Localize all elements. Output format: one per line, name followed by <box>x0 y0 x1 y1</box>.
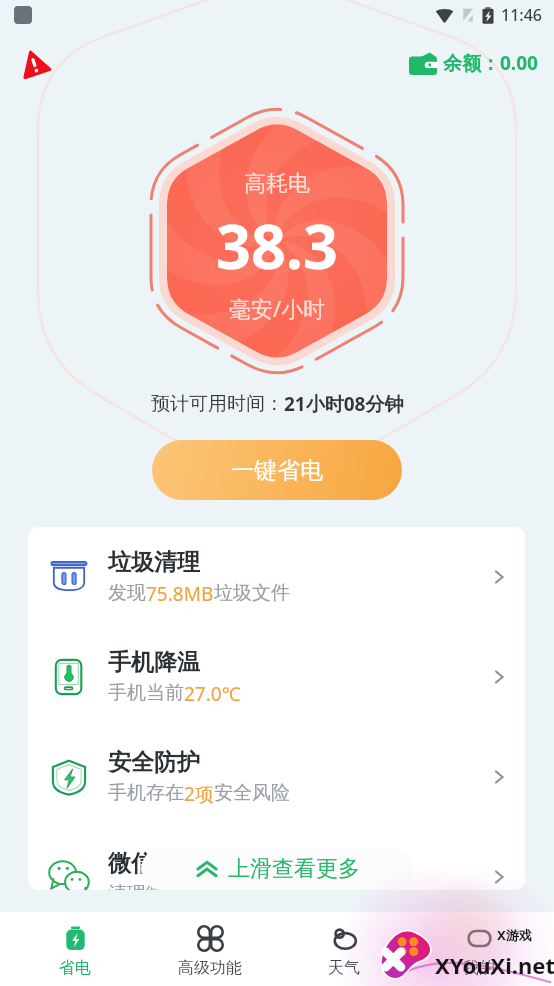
button[interactable]: 安全防护 <box>28 727 525 827</box>
staticText: 38.3 <box>216 204 338 287</box>
staticText: 27.0℃ <box>184 681 241 707</box>
staticText: 安全风险 <box>214 781 290 805</box>
button[interactable]: 天气 <box>284 912 404 978</box>
button[interactable]: 微信清理 <box>28 827 525 890</box>
staticText: 2项 <box>184 781 214 807</box>
staticText: 余额：0.00 <box>443 50 538 76</box>
staticText: XYouXi.net <box>435 950 554 980</box>
staticText: 垃圾清理 <box>108 548 200 577</box>
staticText: 21小时08分钟 <box>284 391 404 417</box>
staticText: 安全防护 <box>108 748 200 777</box>
staticText: 我的 <box>463 958 495 978</box>
button[interactable]: 上滑查看更多 <box>141 848 413 890</box>
staticText: 垃圾文件 <box>214 581 290 605</box>
staticText: 毫安/小时 <box>229 293 326 323</box>
staticText: 75.8MB <box>146 581 214 607</box>
staticText: 清理微信垃圾 <box>108 882 222 890</box>
button[interactable]: 省电 <box>15 912 135 978</box>
staticText: 上滑查看更多 <box>228 855 360 883</box>
staticText: 省电 <box>59 958 91 978</box>
button[interactable]: 余额：0.00 <box>409 50 538 76</box>
button[interactable]: Warning <box>16 45 52 81</box>
button[interactable]: 手机降温 <box>28 627 525 727</box>
staticText: X游戏 <box>497 926 554 944</box>
button[interactable]: 一键省电 <box>152 440 402 500</box>
staticText: 发现 <box>108 581 146 605</box>
staticText: 手机存在 <box>108 781 184 805</box>
staticText: 预计可用时间： <box>151 392 284 416</box>
button[interactable]: 高级功能 <box>150 912 270 978</box>
staticText: 手机当前 <box>108 681 184 705</box>
staticText: 高级功能 <box>178 958 242 978</box>
staticText: 微信清理 <box>108 849 200 878</box>
button[interactable]: 垃圾清理 <box>28 527 525 627</box>
staticText: 天气 <box>328 958 360 978</box>
staticText: 手机降温 <box>108 648 200 677</box>
staticText: 高耗电 <box>244 170 310 198</box>
button[interactable]: 我的 <box>419 912 539 978</box>
staticText: 11:46 <box>501 4 542 26</box>
staticText: 一键省电 <box>231 456 323 485</box>
